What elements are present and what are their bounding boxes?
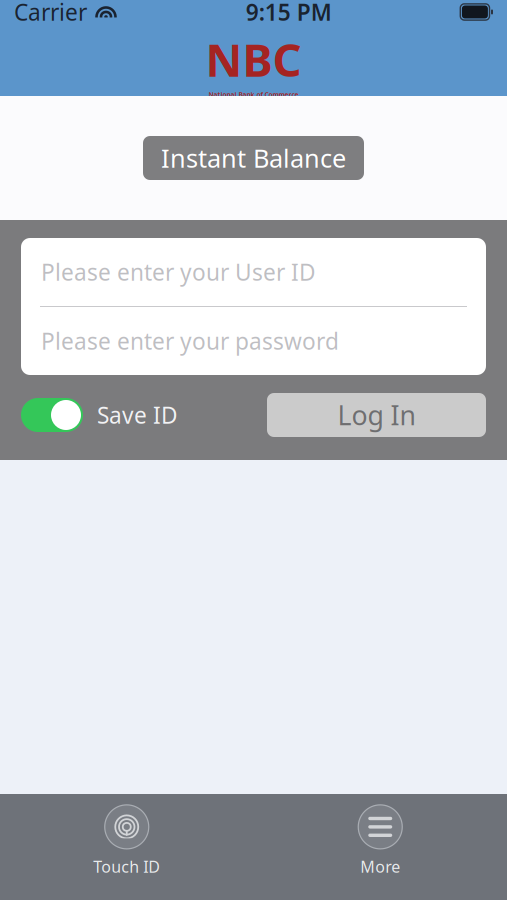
button[interactable]: Save ID xyxy=(21,398,178,432)
staticText: Log In xyxy=(337,397,415,433)
button[interactable]: Please enter your password xyxy=(21,307,486,375)
staticText: National Bank of Commerce xyxy=(208,90,298,99)
button[interactable]: More xyxy=(332,805,428,877)
staticText: 9:15 PM xyxy=(246,0,332,27)
button[interactable]: Instant Balance xyxy=(143,136,364,180)
staticText: NBC xyxy=(205,29,301,89)
staticText: Save ID xyxy=(97,400,178,430)
staticText: Touch ID xyxy=(93,856,160,877)
staticText: Instant Balance xyxy=(161,141,346,175)
staticText: More xyxy=(360,856,400,877)
staticText: Carrier xyxy=(14,0,87,27)
button[interactable]: Please enter your User ID xyxy=(21,238,486,306)
button[interactable]: Log In xyxy=(267,393,486,437)
staticText: Please enter your User ID xyxy=(41,257,316,287)
staticText: Please enter your password xyxy=(41,326,339,356)
button[interactable]: Touch ID xyxy=(79,805,175,877)
